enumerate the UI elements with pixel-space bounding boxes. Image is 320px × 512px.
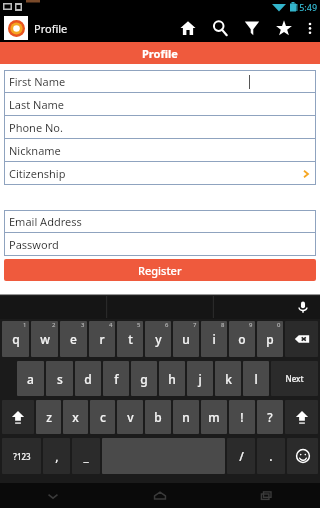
- button[interactable]: Citizenship: [4, 162, 316, 185]
- button[interactable]: m: [201, 400, 227, 434]
- staticText: z: [46, 409, 52, 425]
- button[interactable]: Register: [4, 259, 316, 281]
- staticText: w: [40, 331, 50, 347]
- button[interactable]: u: [173, 321, 199, 357]
- button[interactable]: k: [215, 361, 241, 396]
- button[interactable]: !: [229, 400, 255, 434]
- staticText: 1: [23, 321, 27, 329]
- button[interactable]: e: [60, 321, 87, 357]
- staticText: 6: [165, 321, 169, 329]
- staticText: r: [99, 331, 105, 347]
- staticText: n: [182, 409, 190, 425]
- button[interactable]: w: [31, 321, 58, 357]
- staticText: x: [72, 409, 79, 425]
- button[interactable]: Back: [0, 483, 106, 508]
- button[interactable]: Shift: [285, 400, 318, 434]
- button[interactable]: Home: [106, 483, 213, 508]
- staticText: j: [198, 371, 202, 387]
- button[interactable]: o: [229, 321, 255, 357]
- button[interactable]: Shift: [2, 400, 34, 434]
- button[interactable]: z: [36, 400, 61, 434]
- staticText: 7: [193, 321, 197, 329]
- button[interactable]: Last Name: [4, 93, 316, 116]
- staticText: b: [154, 409, 162, 425]
- staticText: First Name: [9, 74, 66, 89]
- staticText: f: [114, 371, 119, 387]
- button[interactable]: First Name: [4, 70, 316, 93]
- staticText: ,: [55, 448, 59, 464]
- staticText: e: [70, 331, 77, 347]
- button[interactable]: n: [173, 400, 199, 434]
- button[interactable]: x: [63, 400, 88, 434]
- button[interactable]: Favorites: [268, 14, 300, 42]
- staticText: 0: [277, 321, 281, 329]
- staticText: Next: [285, 373, 304, 384]
- staticText: h: [168, 371, 176, 387]
- button[interactable]: Filter: [236, 14, 268, 42]
- staticText: t: [128, 331, 133, 347]
- staticText: d: [84, 371, 92, 387]
- staticText: Last Name: [9, 97, 65, 112]
- button[interactable]: Next: [271, 361, 318, 396]
- staticText: s: [57, 371, 63, 387]
- button[interactable]: _: [72, 438, 100, 474]
- button[interactable]: g: [131, 361, 157, 396]
- button[interactable]: App logo: [4, 16, 28, 40]
- button[interactable]: Emoji: [287, 438, 318, 474]
- staticText: 2: [52, 321, 56, 329]
- staticText: Profile: [142, 46, 178, 61]
- staticText: Email Address: [9, 214, 82, 229]
- staticText: i: [212, 331, 216, 347]
- staticText: _: [83, 448, 89, 464]
- button[interactable]: j: [187, 361, 213, 396]
- button[interactable]: ,: [43, 438, 70, 474]
- button[interactable]: Password: [4, 233, 316, 256]
- button[interactable]: c: [90, 400, 115, 434]
- button[interactable]: b: [145, 400, 171, 434]
- staticText: m: [208, 409, 220, 425]
- button[interactable]: Home: [172, 14, 204, 42]
- staticText: .: [269, 448, 273, 464]
- button[interactable]: More options: [300, 14, 320, 42]
- button[interactable]: Recent apps: [213, 483, 320, 508]
- button[interactable]: Search: [204, 14, 236, 42]
- button[interactable]: s: [46, 361, 73, 396]
- staticText: 5: [137, 321, 141, 329]
- button[interactable]: f: [103, 361, 129, 396]
- button[interactable]: .: [257, 438, 285, 474]
- staticText: Citizenship: [9, 166, 66, 181]
- button[interactable]: Phone No.: [4, 116, 316, 139]
- button[interactable]: ?123: [2, 438, 41, 474]
- staticText: /: [239, 448, 244, 464]
- button[interactable]: /: [227, 438, 255, 474]
- staticText: q: [12, 331, 20, 347]
- staticText: Profile: [34, 21, 68, 36]
- button[interactable]: q: [2, 321, 29, 357]
- button[interactable]: d: [75, 361, 101, 396]
- staticText: ?: [267, 409, 273, 425]
- button[interactable]: p: [257, 321, 283, 357]
- button[interactable]: ?: [257, 400, 283, 434]
- button[interactable]: Delete: [285, 321, 318, 357]
- staticText: l: [254, 371, 258, 387]
- button[interactable]: r: [89, 321, 115, 357]
- staticText: v: [127, 409, 134, 425]
- staticText: !: [240, 409, 244, 425]
- button[interactable]: v: [117, 400, 143, 434]
- staticText: a: [27, 371, 34, 387]
- button[interactable]: Email Address: [4, 210, 316, 233]
- staticText: p: [266, 331, 274, 347]
- button[interactable]: i: [201, 321, 227, 357]
- button[interactable]: h: [159, 361, 185, 396]
- button[interactable]: t: [117, 321, 143, 357]
- button[interactable]: Voice input: [294, 298, 312, 316]
- staticText: Nickname: [9, 143, 61, 158]
- staticText: c: [100, 409, 106, 425]
- staticText: 4: [109, 321, 113, 329]
- button[interactable]: Nickname: [4, 139, 316, 162]
- staticText: k: [225, 371, 232, 387]
- button[interactable]: a: [17, 361, 44, 396]
- button[interactable]: l: [243, 361, 269, 396]
- button[interactable]: y: [145, 321, 171, 357]
